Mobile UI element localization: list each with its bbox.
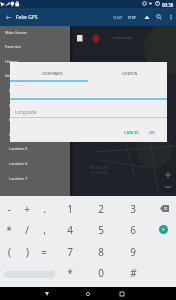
staticText: Location 5	[9, 146, 28, 151]
button[interactable]: STOP	[127, 12, 138, 23]
button[interactable]: 1	[61, 200, 79, 218]
button[interactable]: =	[35, 243, 53, 261]
button[interactable]: .	[35, 200, 53, 218]
staticText: CANCEL	[124, 130, 140, 135]
button[interactable]: Search	[153, 8, 165, 26]
button[interactable]: +	[18, 200, 36, 218]
staticText: Location 2	[9, 103, 28, 108]
staticText: /	[25, 223, 29, 237]
button[interactable]: Location 5	[0, 141, 70, 156]
button[interactable]: ,	[35, 221, 53, 239]
button[interactable]: *	[61, 264, 79, 282]
staticText: 2	[98, 202, 104, 216]
button[interactable]: /	[18, 221, 36, 239]
button[interactable]: 5	[92, 221, 110, 239]
staticText: Location 6	[9, 161, 28, 166]
button[interactable]: LOCATION	[122, 72, 137, 76]
button[interactable]: 0	[92, 264, 110, 282]
staticText: Location 7	[9, 176, 28, 181]
staticText: 48.145278	[90, 165, 107, 170]
staticText: Location 4	[9, 132, 28, 137]
button[interactable]: Location 1	[0, 83, 70, 98]
staticText: +	[24, 202, 30, 216]
button[interactable]: Settings	[0, 68, 70, 83]
button[interactable]: More options	[165, 8, 176, 26]
button[interactable]: CANCEL	[122, 128, 142, 137]
button[interactable]: START	[112, 12, 124, 23]
button[interactable]: 6	[124, 221, 142, 239]
staticText: History	[5, 59, 18, 64]
staticText: Settings	[5, 73, 20, 78]
staticText: Latitude	[14, 84, 23, 87]
staticText: )	[26, 245, 29, 259]
staticText: *	[6, 223, 12, 237]
staticText: Main Screen	[5, 30, 27, 35]
staticText: 9	[130, 245, 136, 259]
button[interactable]: Layers	[141, 8, 153, 26]
button[interactable]: Location 2	[0, 98, 70, 113]
button[interactable]: Home	[81, 287, 94, 300]
button[interactable]: Zoom out	[163, 182, 172, 191]
staticText: #	[130, 266, 137, 280]
button[interactable]: Location 3	[0, 112, 70, 127]
button[interactable]: Main Screen	[0, 25, 70, 40]
staticText: START	[113, 15, 123, 20]
button[interactable]: Zoom in	[163, 170, 172, 179]
button[interactable]: Enter	[159, 225, 168, 234]
button[interactable]: 4	[61, 221, 79, 239]
staticText: Location 1	[9, 88, 28, 93]
staticText: *	[67, 266, 73, 280]
staticText: Longitude	[15, 109, 37, 115]
staticText: 00:38	[162, 2, 174, 8]
button[interactable]: 3	[124, 200, 142, 218]
staticText: 1	[67, 202, 73, 216]
button[interactable]: Back	[0, 8, 16, 26]
button[interactable]: Location 6	[0, 156, 70, 171]
staticText: .	[43, 202, 46, 216]
button[interactable]: History	[0, 54, 70, 69]
staticText: 7	[67, 245, 73, 259]
staticText: Location 3	[9, 117, 28, 122]
button[interactable]: Location 7	[0, 171, 70, 186]
button[interactable]: OK	[147, 128, 157, 137]
staticText: ,	[43, 223, 46, 237]
button[interactable]: -	[0, 200, 18, 218]
button[interactable]: )	[18, 243, 36, 261]
staticText: 5	[98, 223, 104, 237]
button[interactable]: (	[0, 243, 18, 261]
staticText: 11.573333	[90, 170, 107, 175]
staticText: 3	[130, 202, 136, 216]
button[interactable]: 7	[61, 243, 79, 261]
staticText: (	[8, 245, 11, 259]
button[interactable]: 2	[92, 200, 110, 218]
staticText: OK	[149, 130, 155, 135]
button[interactable]: 9	[124, 243, 142, 261]
staticText: Fake GPS	[16, 14, 38, 21]
button[interactable]: #	[124, 264, 142, 282]
staticText: Favorites	[5, 44, 22, 49]
staticText: 0	[98, 266, 104, 280]
staticText: 8	[98, 245, 104, 259]
button[interactable]: Back	[40, 287, 53, 300]
staticText: =	[41, 245, 47, 259]
button[interactable]: Backspace	[155, 199, 173, 217]
button[interactable]: Favorites	[0, 39, 70, 54]
staticText: STOP	[128, 15, 137, 20]
staticText: -	[7, 202, 11, 216]
button[interactable]: *	[0, 221, 18, 239]
staticText: 6	[130, 223, 136, 237]
button[interactable]: Location 4	[0, 127, 70, 142]
button[interactable]: 8	[92, 243, 110, 261]
button[interactable]: COORDINATES	[42, 72, 63, 76]
button[interactable]: Recents	[115, 287, 128, 300]
staticText: 4	[67, 223, 73, 237]
